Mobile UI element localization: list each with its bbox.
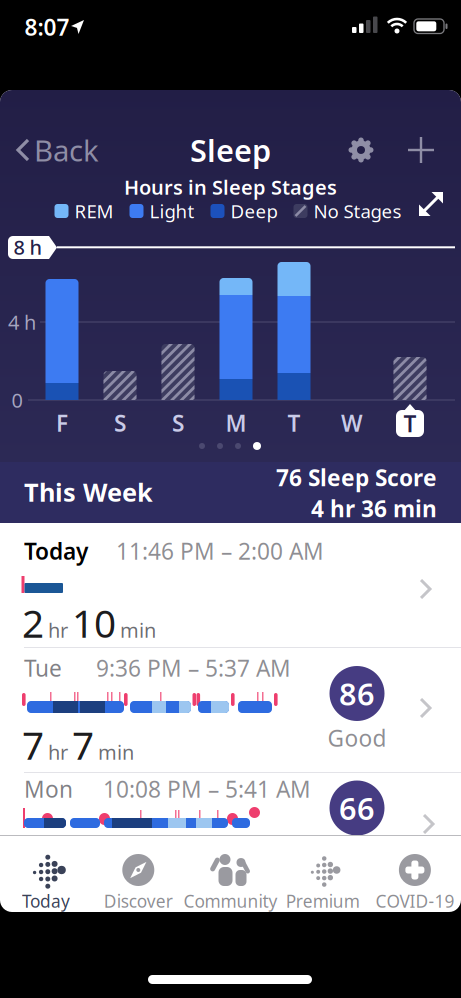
staticText: 4 hr 36 min [311,493,437,524]
staticText: F [56,408,68,438]
button[interactable]: Discover [92,846,184,916]
staticText: W [341,408,363,438]
button[interactable]: Mon [0,772,461,835]
staticText: min [120,617,156,643]
staticText: REM [74,199,113,223]
button[interactable]: Today [0,846,92,916]
staticText: S [114,408,126,438]
staticText: Deep [230,199,277,223]
staticText: This Week [24,475,153,509]
button[interactable]: Back [16,134,106,166]
staticText: Today [24,536,88,566]
button[interactable]: Today [0,523,461,647]
button[interactable]: Premium [277,846,369,916]
staticText: Mon [24,774,73,804]
button[interactable]: Community [184,846,277,916]
staticText: min [98,739,134,765]
staticText: T [287,408,300,438]
staticText: 10 [72,597,116,648]
staticText: COVID-19 [375,889,454,912]
staticText: hr [48,617,68,643]
staticText: Discover [104,889,173,912]
staticText: Premium [286,889,360,912]
staticText: Light [149,199,194,223]
staticText: 11:46 PM – 2:00 AM [116,536,324,566]
staticText: 10:08 PM – 5:41 AM [103,774,311,804]
button[interactable]: Add [404,133,438,167]
staticText: No Stages [313,199,401,223]
staticText: T [403,408,416,438]
button[interactable]: Settings [344,133,378,167]
staticText: 8 h [13,234,42,260]
staticText: 8:07 [24,12,69,42]
staticText: 2 [22,597,44,648]
staticText: Community [183,889,277,912]
staticText: 7 [72,719,94,770]
staticText: 0 [11,387,22,413]
button[interactable]: Tue [0,647,461,772]
staticText: Today [22,889,70,912]
staticText: M [225,408,246,438]
staticText: Back [34,130,99,169]
button[interactable]: Expand chart [416,189,446,219]
staticText: Good [327,723,386,753]
staticText: Sleep [190,130,271,170]
staticText: 66 [339,788,375,828]
staticText: Hours in Sleep Stages [124,174,337,200]
staticText: 7 [22,719,44,770]
staticText: Tue [24,653,62,683]
staticText: S [172,408,184,438]
staticText: 9:36 PM – 5:37 AM [96,653,291,683]
staticText: 76 Sleep Score [276,462,437,492]
button[interactable]: COVID-19 [369,846,461,916]
staticText: hr [48,739,68,765]
staticText: 86 [339,673,375,714]
staticText: 4 h [8,309,36,335]
